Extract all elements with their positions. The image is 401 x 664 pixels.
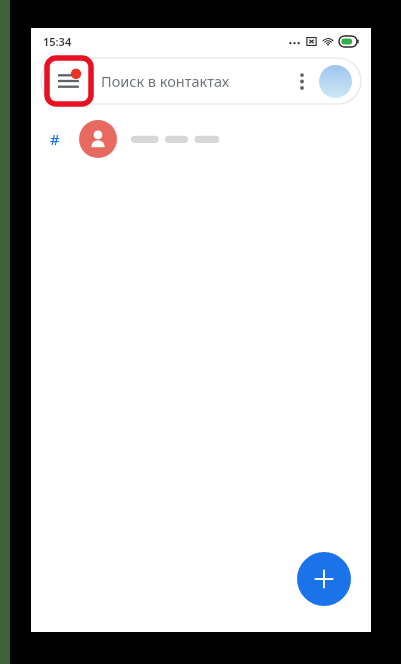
- staticText: #: [50, 129, 60, 149]
- staticText: Поиск в контактах: [101, 71, 230, 91]
- button[interactable]: Add contact: [297, 552, 351, 606]
- button[interactable]: Open navigation menu: [47, 58, 91, 104]
- button[interactable]: More options: [287, 58, 317, 104]
- staticText: 15:34: [43, 34, 72, 49]
- button[interactable]: #: [31, 112, 371, 166]
- button[interactable]: Account: [319, 65, 352, 98]
